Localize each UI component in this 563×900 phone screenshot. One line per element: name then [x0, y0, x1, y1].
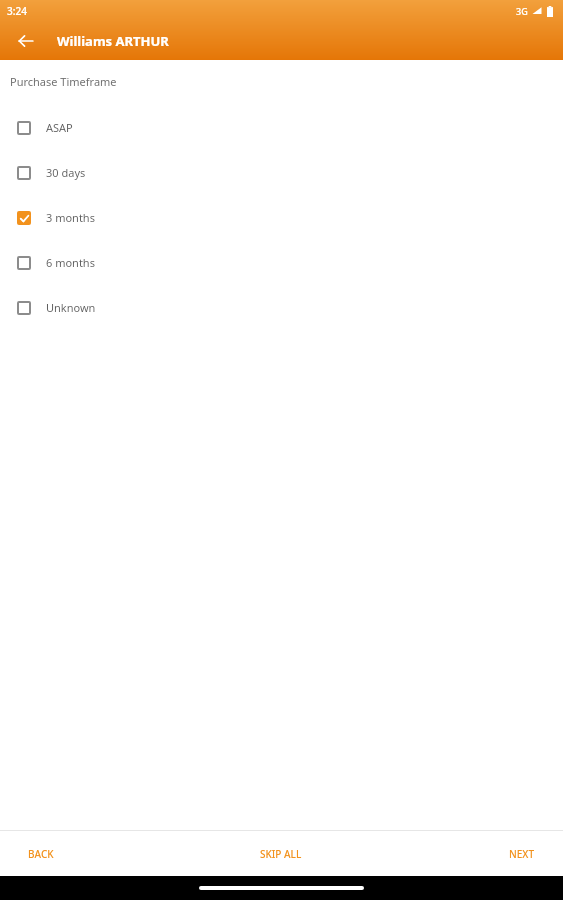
staticText: Williams ARTHUR — [57, 32, 169, 50]
button[interactable]: SKIP ALL — [187, 831, 375, 876]
staticText: 6 months — [46, 255, 95, 270]
button[interactable]: 30 days — [0, 150, 563, 195]
staticText: Purchase Timeframe — [10, 74, 117, 89]
staticText: 3G — [516, 5, 528, 17]
button[interactable]: Back — [10, 25, 42, 57]
staticText: ASAP — [46, 120, 73, 135]
button[interactable]: 3 months — [0, 195, 563, 240]
staticText: 3:24 — [7, 4, 27, 18]
staticText: BACK — [28, 847, 54, 861]
button[interactable]: NEXT — [375, 831, 563, 876]
staticText: 30 days — [46, 165, 86, 180]
staticText: SKIP ALL — [260, 847, 302, 861]
staticText: Unknown — [46, 300, 96, 315]
button[interactable]: Unknown — [0, 285, 563, 330]
button[interactable]: ASAP — [0, 105, 563, 150]
staticText: 3 months — [46, 210, 95, 225]
button[interactable]: 6 months — [0, 240, 563, 285]
staticText: NEXT — [509, 847, 535, 861]
button[interactable]: BACK — [0, 831, 187, 876]
